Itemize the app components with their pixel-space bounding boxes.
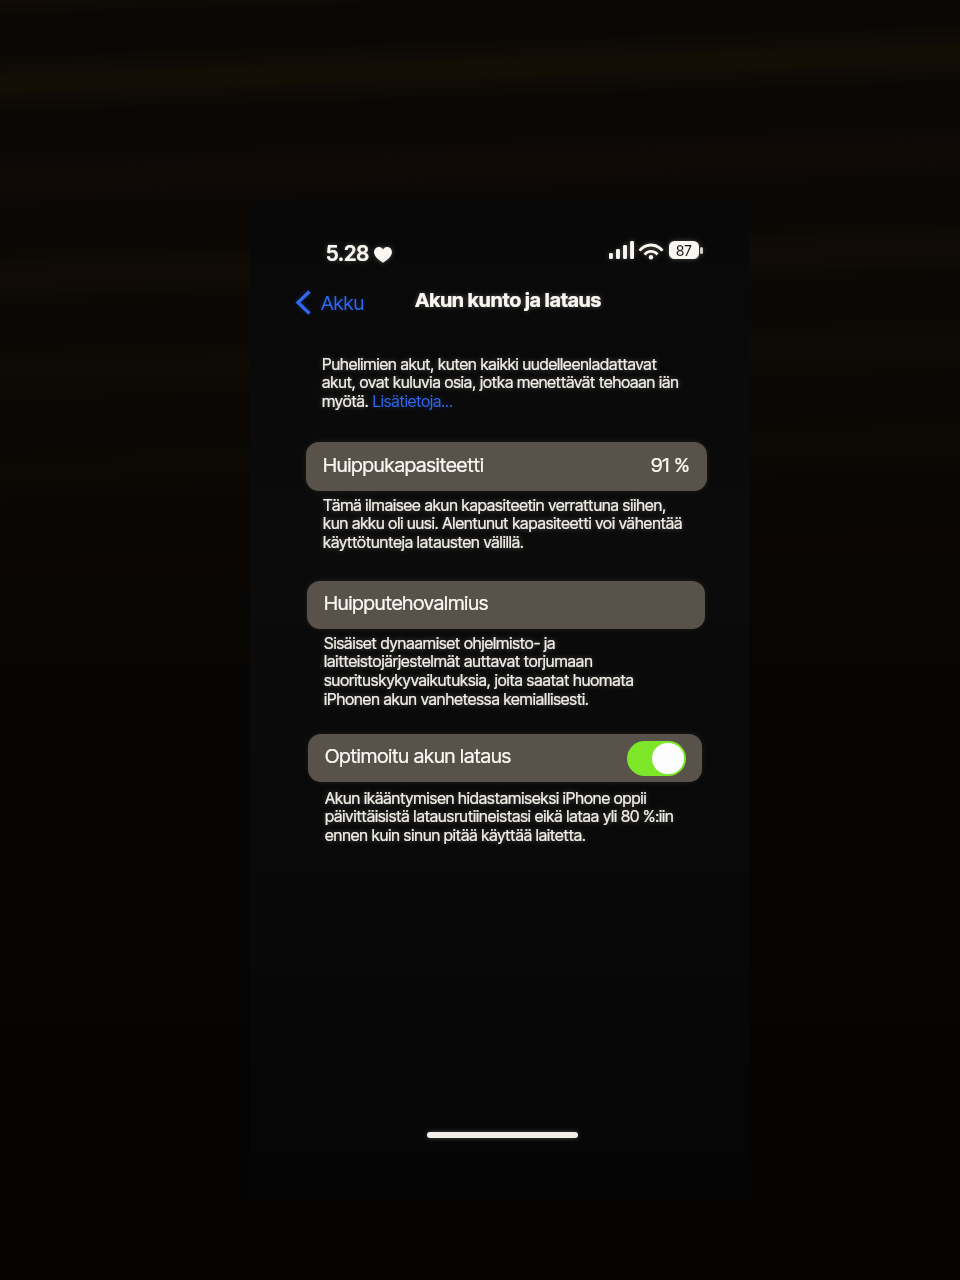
button[interactable]: Akku (296, 290, 365, 315)
button[interactable]: Optimoitu akun lataus (308, 734, 702, 782)
staticText: Optimoitu akun lataus (325, 744, 512, 768)
staticText: Sisäiset dynaamiset ohjelmisto- ja laitt… (324, 633, 689, 709)
staticText: 5.28 (326, 241, 369, 266)
staticText: 91 % (651, 453, 690, 477)
staticText: 5.28 (326, 241, 369, 266)
staticText: Sisäiset dynaamiset ohjelmisto- ja laitt… (324, 633, 689, 709)
button[interactable]: Huipputehovalmius (307, 581, 705, 629)
staticText: Huippukapasiteetti (323, 453, 484, 477)
staticText: Puhelimien akut, kuten kaikki uudelleenl… (322, 354, 687, 411)
staticText: Huippukapasiteetti (323, 453, 484, 477)
button[interactable]: Optimoitu akun lataus (627, 741, 686, 776)
staticText: Akun ikääntymisen hidastamiseksi iPhone … (325, 788, 690, 845)
staticText: Akku (321, 291, 365, 315)
button[interactable]: Huippukapasiteetti (306, 442, 707, 491)
staticText: Akun ikääntymisen hidastamiseksi iPhone … (325, 788, 690, 845)
staticText: Optimoitu akun lataus (325, 744, 512, 768)
button[interactable]: Akku (296, 290, 365, 315)
button[interactable]: Optimoitu akun lataus (308, 734, 702, 782)
staticText: Akun kunto ja lataus (415, 288, 602, 312)
button[interactable]: Huippukapasiteetti (306, 442, 707, 491)
staticText: Akun kunto ja lataus (415, 288, 602, 312)
staticText: 87 (676, 242, 692, 259)
staticText: Huipputehovalmius (324, 591, 489, 615)
staticText: Tämä ilmaisee akun kapasiteetin verrattu… (323, 495, 688, 552)
button[interactable]: Optimoitu akun lataus (627, 741, 686, 776)
button[interactable]: Huipputehovalmius (307, 581, 705, 629)
staticText: 91 % (651, 453, 690, 477)
staticText: 87 (676, 242, 692, 259)
staticText: Huipputehovalmius (324, 591, 489, 615)
staticText: Puhelimien akut, kuten kaikki uudelleenl… (322, 354, 687, 411)
staticText: Tämä ilmaisee akun kapasiteetin verrattu… (323, 495, 688, 552)
staticText: Akku (321, 291, 365, 315)
